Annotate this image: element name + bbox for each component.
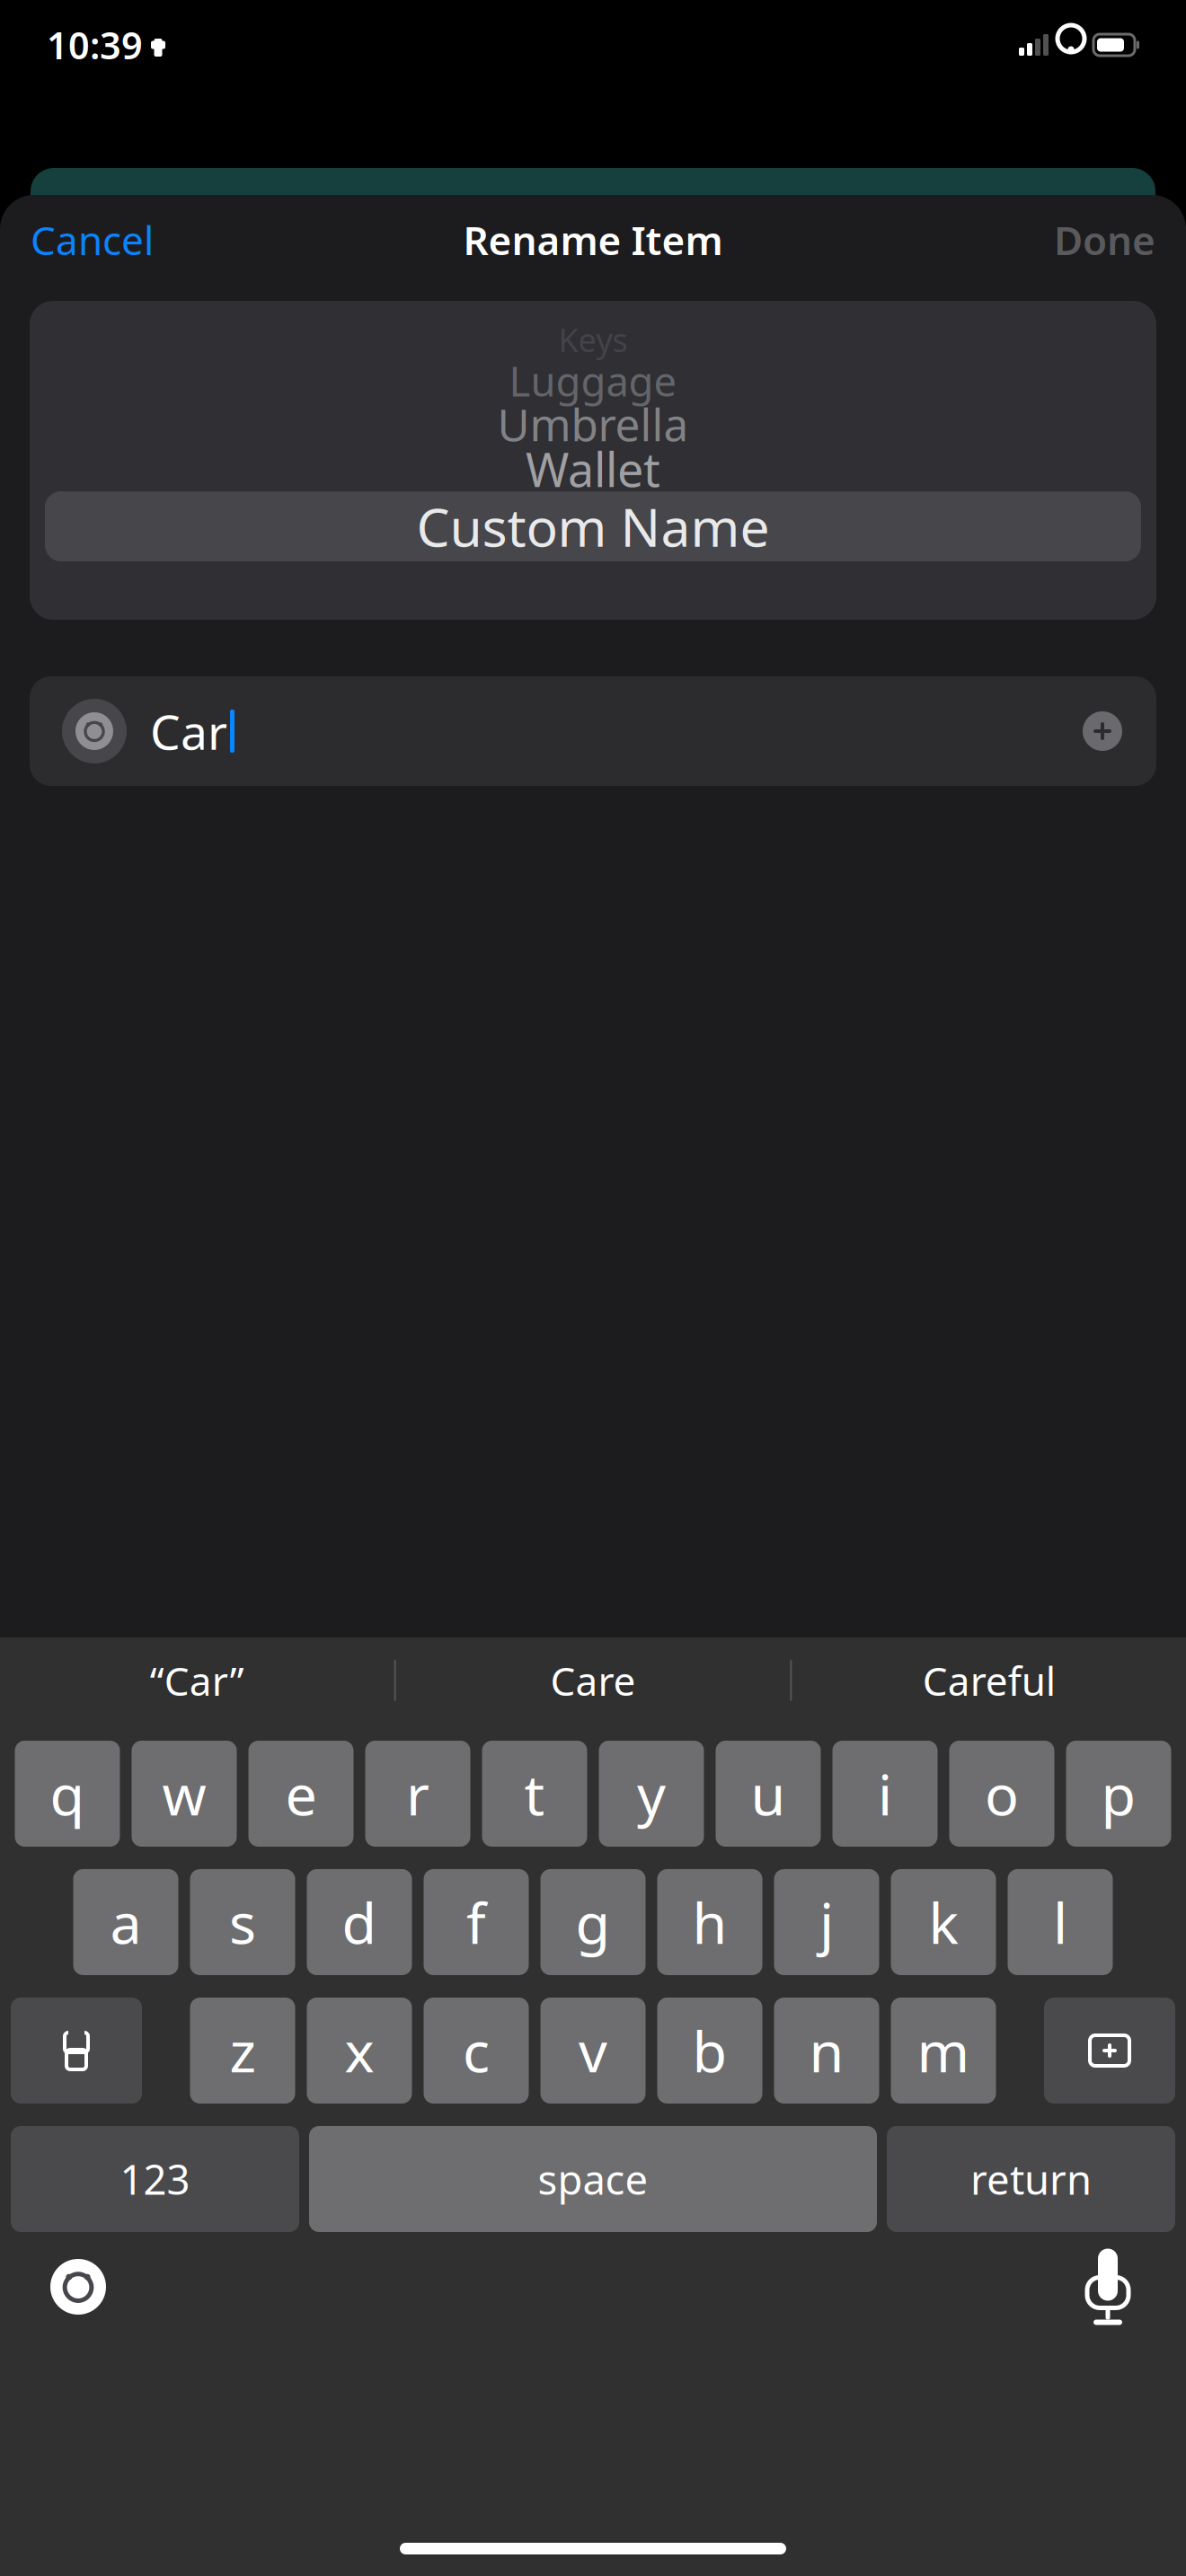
staticText: Custom Name: [416, 491, 770, 561]
button[interactable]: j: [774, 1869, 879, 1975]
staticText: space: [538, 2152, 648, 2206]
staticText: Care: [550, 1654, 636, 1707]
staticText: y: [637, 1756, 666, 1831]
button[interactable]: b: [657, 1998, 762, 2104]
staticText: x: [345, 2013, 374, 2088]
button[interactable]: r: [365, 1741, 470, 1847]
staticText: k: [929, 1885, 958, 1959]
button[interactable]: Cancel: [0, 194, 184, 286]
button[interactable]: Shift: [11, 1998, 142, 2104]
staticText: Done: [1054, 214, 1155, 266]
button[interactable]: space: [309, 2126, 877, 2232]
button[interactable]: u: [716, 1741, 821, 1847]
button[interactable]: i: [832, 1741, 938, 1847]
button[interactable]: z: [190, 1998, 295, 2104]
button[interactable]: Dictation: [1058, 2237, 1157, 2336]
staticText: e: [285, 1756, 317, 1831]
staticText: s: [229, 1885, 256, 1959]
staticText: m: [917, 2013, 970, 2088]
staticText: “Car”: [150, 1654, 244, 1707]
button[interactable]: c: [424, 1998, 529, 2104]
button[interactable]: g: [540, 1869, 646, 1975]
button[interactable]: p: [1066, 1741, 1171, 1847]
button[interactable]: e: [248, 1741, 354, 1847]
staticText: Cancel: [31, 214, 154, 266]
staticText: Rename Item: [463, 214, 723, 266]
button[interactable]: m: [891, 1998, 996, 2104]
button[interactable]: return: [887, 2126, 1175, 2232]
staticText: return: [970, 2152, 1092, 2206]
staticText: r: [406, 1756, 429, 1831]
staticText: c: [463, 2013, 490, 2088]
staticText: Umbrella: [497, 394, 689, 453]
button[interactable]: t: [482, 1741, 587, 1847]
staticText: p: [1101, 1756, 1136, 1831]
button[interactable]: s: [190, 1869, 295, 1975]
staticText: Keys: [558, 318, 628, 361]
staticText: b: [692, 2013, 727, 2088]
staticText: Careful: [922, 1654, 1055, 1707]
button[interactable]: Custom Name: [45, 491, 1141, 561]
button[interactable]: Careful: [792, 1637, 1186, 1724]
button[interactable]: n: [774, 1998, 879, 2104]
staticText: h: [692, 1885, 727, 1959]
button[interactable]: Delete: [1044, 1998, 1175, 2104]
staticText: Wallet: [526, 438, 660, 500]
staticText: j: [819, 1885, 834, 1959]
staticText: o: [985, 1756, 1019, 1831]
button[interactable]: Done: [1023, 194, 1186, 286]
button[interactable]: a: [73, 1869, 178, 1975]
staticText: n: [809, 2013, 844, 2088]
staticText: f: [466, 1885, 486, 1959]
button[interactable]: Clear text: [1070, 699, 1135, 763]
button[interactable]: k: [891, 1869, 996, 1975]
staticText: 10:39: [47, 20, 143, 70]
staticText: a: [110, 1885, 142, 1959]
button[interactable]: v: [540, 1998, 646, 2104]
staticText: u: [751, 1756, 786, 1831]
button[interactable]: x: [307, 1998, 412, 2104]
button[interactable]: Emoji keyboard: [29, 2237, 128, 2336]
staticText: z: [230, 2013, 256, 2088]
button[interactable]: h: [657, 1869, 762, 1975]
button[interactable]: l: [1008, 1869, 1113, 1975]
button[interactable]: Care: [396, 1637, 790, 1724]
button[interactable]: o: [949, 1741, 1054, 1847]
button[interactable]: w: [132, 1741, 237, 1847]
button[interactable]: d: [307, 1869, 412, 1975]
button[interactable]: Choose emoji: [51, 688, 137, 774]
staticText: g: [575, 1885, 611, 1959]
button[interactable]: “Car”: [0, 1637, 394, 1724]
staticText: w: [162, 1756, 206, 1831]
button[interactable]: q: [15, 1741, 120, 1847]
staticText: q: [50, 1756, 85, 1831]
button[interactable]: 123: [11, 2126, 299, 2232]
staticText: l: [1053, 1885, 1067, 1959]
staticText: i: [878, 1756, 892, 1831]
staticText: Car: [150, 699, 227, 763]
staticText: t: [524, 1756, 545, 1831]
staticText: v: [579, 2013, 607, 2088]
staticText: Luggage: [509, 354, 677, 408]
staticText: d: [342, 1885, 377, 1959]
button[interactable]: f: [424, 1869, 529, 1975]
button[interactable]: y: [599, 1741, 704, 1847]
staticText: 123: [120, 2152, 190, 2206]
